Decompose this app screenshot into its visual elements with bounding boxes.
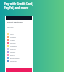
button[interactable]: Amex	[5, 38, 33, 41]
staticText: PayPal, and more	[4, 6, 29, 10]
button[interactable]: Sofort	[5, 50, 33, 53]
button[interactable]: Klarna	[5, 47, 33, 50]
button[interactable]: iDEAL	[5, 53, 33, 56]
button[interactable]: Visa	[5, 32, 33, 35]
staticText: Visa	[10, 33, 14, 35]
staticText: Pay with Credit Card,	[4, 2, 34, 6]
staticText: PayPal	[10, 42, 16, 44]
staticText: Secure	[7, 26, 14, 29]
staticText: iDEAL	[10, 54, 15, 56]
staticText: Bancontact	[10, 57, 20, 59]
button[interactable]: Bancontact	[5, 56, 33, 59]
button[interactable]: Maestro	[5, 44, 33, 47]
staticText: Sofort	[10, 51, 16, 53]
button[interactable]: Master	[5, 35, 33, 38]
button[interactable]: PayPal	[5, 41, 33, 44]
staticText: Klarna	[10, 48, 16, 50]
button[interactable]: Giropay	[5, 59, 33, 62]
staticText: Maestro	[10, 45, 17, 47]
staticText: Amex	[10, 39, 15, 41]
staticText: Master	[10, 36, 16, 38]
staticText: Select method	[7, 21, 23, 24]
staticText: Giropay	[10, 60, 17, 62]
